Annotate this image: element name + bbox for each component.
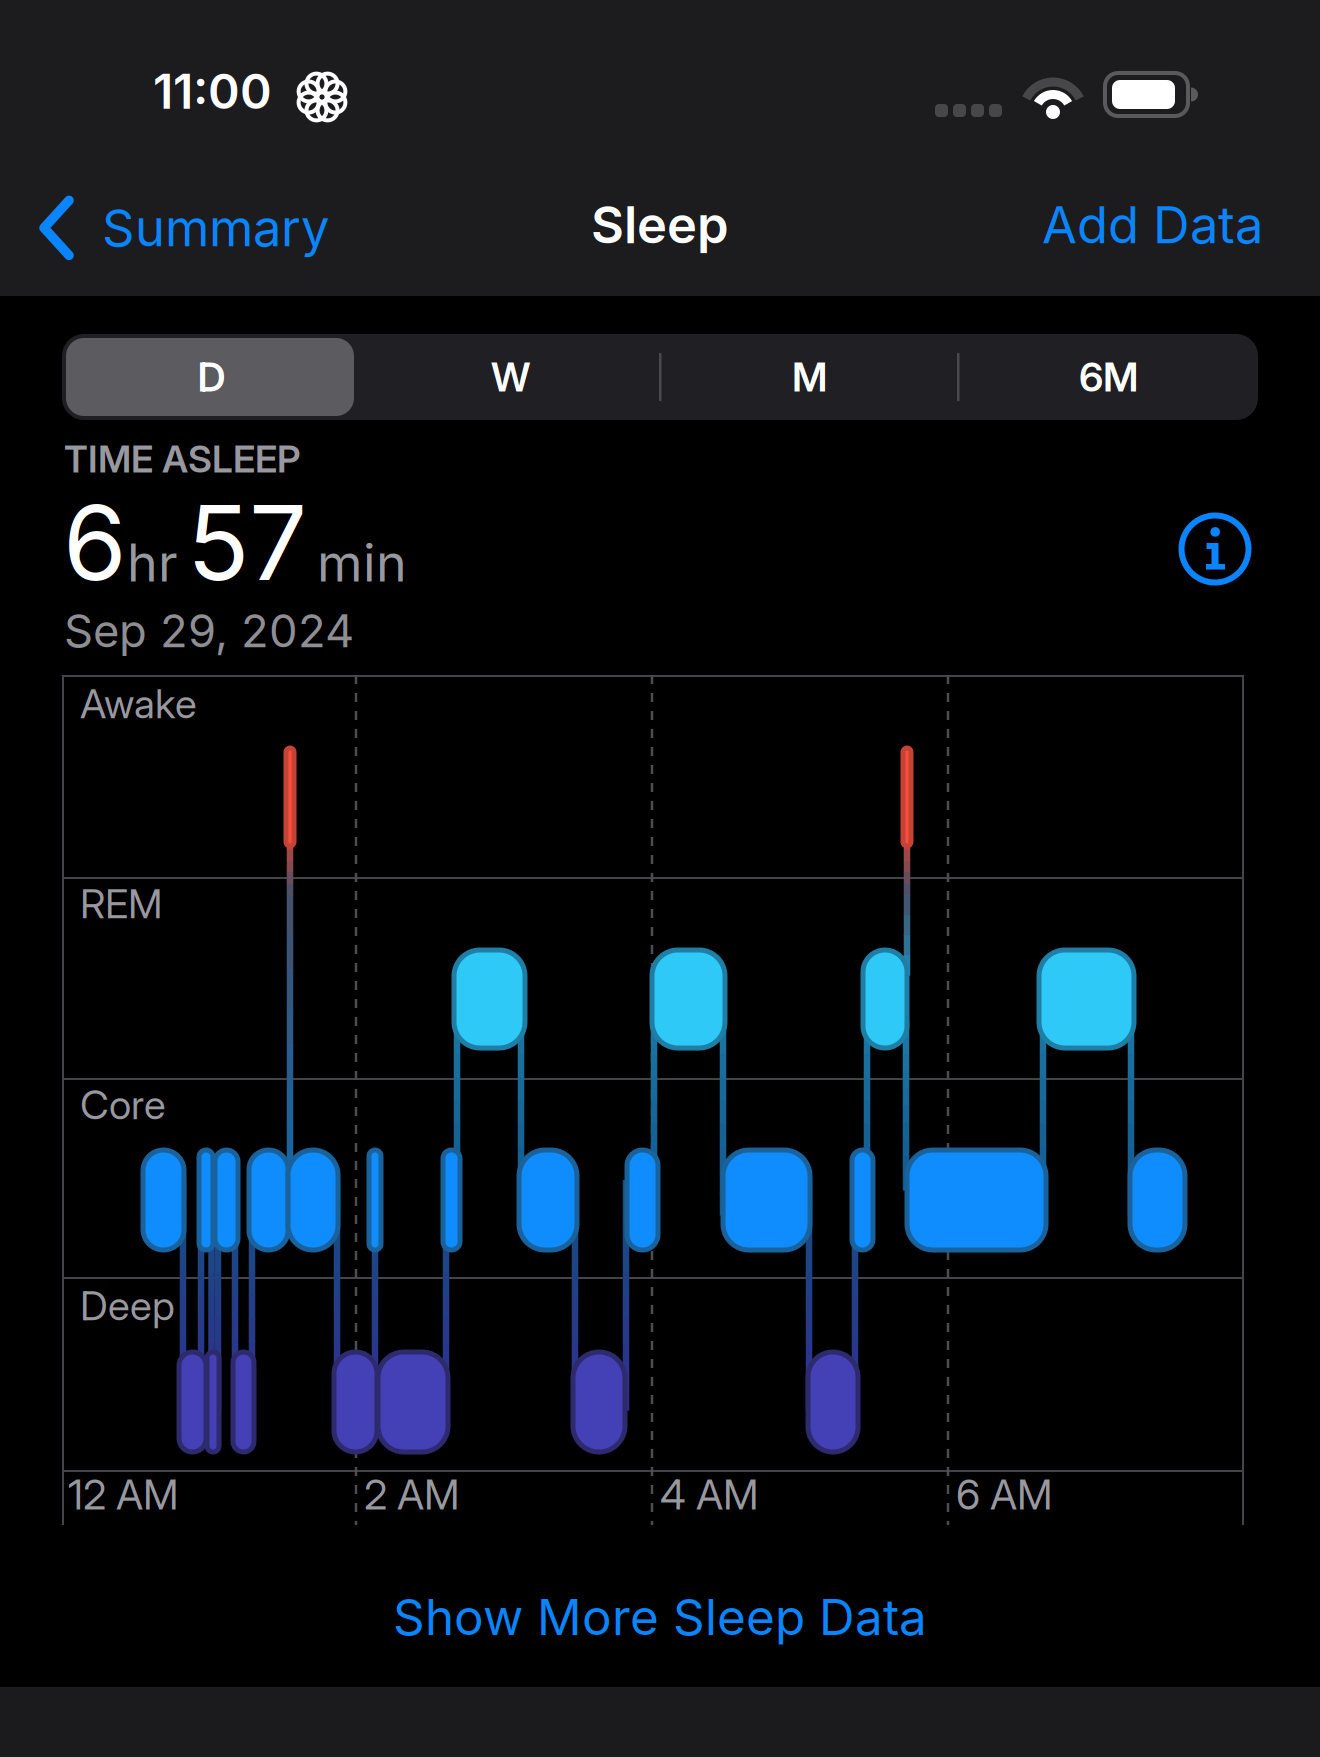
button[interactable]: D <box>62 334 361 420</box>
staticText: Add Data <box>1042 195 1263 255</box>
staticText: 12 AM <box>68 1470 179 1519</box>
button[interactable]: Add Data <box>1042 195 1263 255</box>
button[interactable]: M <box>660 334 959 420</box>
staticText: Show More Sleep Data <box>393 1588 927 1646</box>
staticText: 4 AM <box>660 1470 759 1519</box>
button[interactable]: Back to Summary <box>41 198 329 258</box>
staticText: REM <box>80 880 162 927</box>
staticText: M <box>792 353 827 401</box>
staticText: Awake <box>80 680 197 727</box>
staticText: 6M <box>1079 353 1138 401</box>
staticText: W <box>491 353 530 401</box>
staticText: 57 <box>187 482 307 603</box>
button[interactable]: 6M <box>959 334 1258 420</box>
staticText: Summary <box>102 198 329 258</box>
staticText: 6 <box>63 482 127 603</box>
staticText: D <box>197 353 225 401</box>
staticText: 6 AM <box>956 1470 1053 1519</box>
staticText: hr <box>127 532 178 593</box>
staticText: 11:00 <box>153 63 272 120</box>
staticText: Sep 29, 2024 <box>64 604 354 657</box>
staticText: 2 AM <box>364 1470 460 1519</box>
button[interactable]: About Time Asleep <box>1178 512 1252 586</box>
staticText: Sleep <box>591 195 729 255</box>
staticText: Core <box>80 1081 166 1128</box>
button[interactable]: W <box>361 334 660 420</box>
button[interactable]: Show More Sleep Data <box>393 1588 927 1646</box>
staticText: TIME ASLEEP <box>64 437 300 481</box>
staticText: Deep <box>80 1282 175 1329</box>
staticText: min <box>317 532 407 593</box>
